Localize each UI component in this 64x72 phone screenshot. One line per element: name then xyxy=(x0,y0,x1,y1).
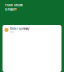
staticText: Order summary xyxy=(10,27,29,30)
staticText: IS READY xyxy=(5,8,17,11)
staticText: YOUR ORDER xyxy=(5,3,23,7)
staticText: 2 items xyxy=(10,31,14,33)
